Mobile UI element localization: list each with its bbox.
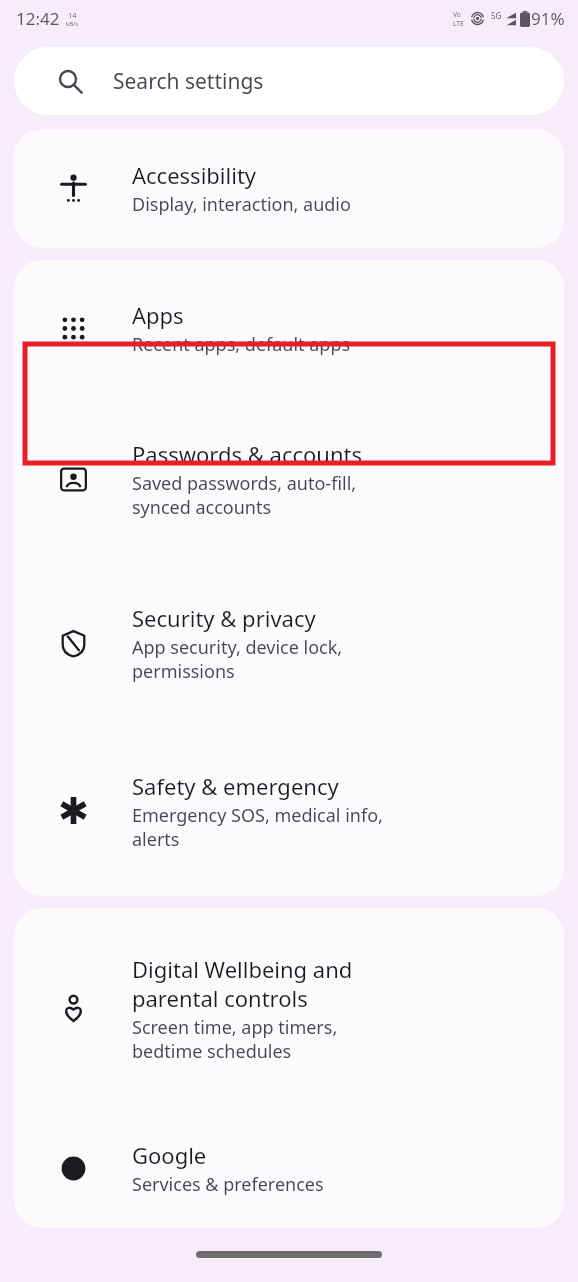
staticText: Security & privacy — [132, 603, 316, 633]
other: Security and privacy — [60, 630, 87, 657]
staticText: Services & preferences — [132, 1172, 324, 1197]
staticText: Display, interaction, audio — [132, 192, 351, 217]
staticText: Digital Wellbeing and parental controls — [132, 954, 353, 1013]
staticText: Saved passwords, auto-fill, synced accou… — [132, 471, 357, 519]
staticText: Google — [132, 1140, 207, 1170]
staticText: Screen time, app timers, bedtime schedul… — [132, 1015, 338, 1063]
staticText: kB/s — [66, 20, 79, 28]
button[interactable]: Accessibility — [14, 129, 564, 248]
other: Passwords and accounts — [60, 466, 87, 493]
button[interactable]: Passwords and accounts — [14, 397, 564, 561]
staticText: Recent apps, default apps — [132, 332, 351, 357]
other: Safety and emergency — [60, 797, 87, 824]
other: Accessibility — [60, 175, 87, 202]
other: Search — [58, 69, 83, 94]
button[interactable]: Security and privacy — [14, 561, 564, 725]
button[interactable]: Digital Wellbeing and parental controls — [14, 908, 564, 1108]
button[interactable]: Safety and emergency — [14, 725, 564, 896]
other: Digital Wellbeing and parental controls — [60, 995, 87, 1022]
staticText: Passwords & accounts — [132, 439, 363, 469]
staticText: 91% — [531, 7, 565, 30]
button[interactable]: Google — [14, 1108, 564, 1228]
staticText: Emergency SOS, medical info, alerts — [132, 803, 383, 851]
button[interactable]: Apps — [14, 260, 564, 397]
staticText: Search settings — [113, 67, 264, 96]
staticText: 5G — [491, 10, 502, 21]
staticText: Accessibility — [132, 160, 257, 190]
staticText: 12:42 — [16, 7, 60, 30]
staticText: Apps — [132, 300, 184, 330]
other: Apps — [60, 315, 87, 342]
button[interactable]: Search — [14, 47, 564, 115]
staticText: 14 — [68, 10, 77, 20]
staticText: LTE — [453, 19, 464, 28]
other: Google — [60, 1155, 87, 1182]
staticText: Safety & emergency — [132, 771, 339, 801]
staticText: App security, device lock, permissions — [132, 635, 343, 683]
staticText: Vo — [453, 10, 461, 19]
